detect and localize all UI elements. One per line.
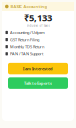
staticText: BASIC Accounting [10, 4, 47, 9]
staticText: GST Return Filing [10, 37, 39, 42]
staticText: Inclusive of Taxes [26, 24, 49, 27]
button[interactable]: Talk to Experts [8, 77, 68, 89]
button[interactable]: I am Interested [8, 63, 68, 74]
staticText: PAN / TAN Support [10, 51, 43, 56]
staticText: Monthly TDS Return [10, 44, 44, 49]
staticText: ₹5,133 [24, 11, 52, 24]
staticText: I am Interested [23, 66, 53, 71]
staticText: Accounting / Udyam [10, 30, 45, 35]
staticText: Talk to Experts [24, 80, 52, 86]
